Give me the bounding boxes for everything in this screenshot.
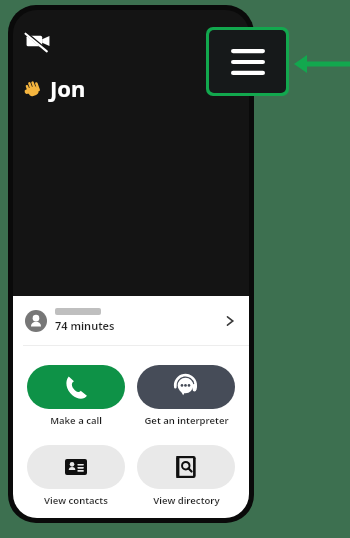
staticText: Make a call: [50, 414, 102, 427]
button[interactable]: 74 minutes: [13, 296, 249, 345]
staticText: View directory: [153, 494, 220, 507]
button[interactable]: Make a call: [27, 365, 125, 427]
button[interactable]: Video off: [25, 28, 51, 54]
staticText: 74 minutes: [55, 318, 115, 333]
staticText: Jon: [50, 73, 86, 103]
button[interactable]: View directory: [137, 445, 235, 507]
staticText: View contacts: [44, 494, 108, 507]
staticText: Get an interpreter: [144, 414, 229, 427]
button[interactable]: View contacts: [27, 445, 125, 507]
button[interactable]: Menu: [209, 30, 286, 93]
button[interactable]: Get an interpreter: [137, 365, 235, 427]
